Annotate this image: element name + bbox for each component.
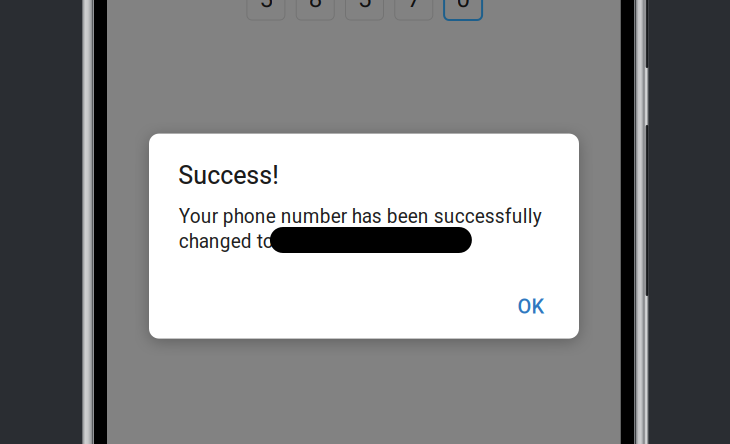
- button[interactable]: Code digit 0: [444, 0, 482, 20]
- button[interactable]: Code digit 7: [395, 0, 433, 20]
- staticText: Success!: [178, 161, 279, 190]
- staticText: 0: [457, 0, 470, 13]
- staticText: Your phone number has been successfully: [179, 205, 542, 228]
- staticText: 5: [358, 0, 371, 13]
- staticText: 5: [259, 0, 272, 13]
- button[interactable]: Code digit 8: [296, 0, 334, 20]
- staticText: 8: [309, 0, 322, 13]
- staticText: changed to: [179, 230, 274, 253]
- staticText: 7: [407, 0, 420, 13]
- button[interactable]: Code digit 5: [345, 0, 383, 20]
- button[interactable]: OK: [499, 288, 563, 326]
- button[interactable]: Code digit 5: [247, 0, 285, 20]
- staticText: OK: [517, 295, 544, 318]
